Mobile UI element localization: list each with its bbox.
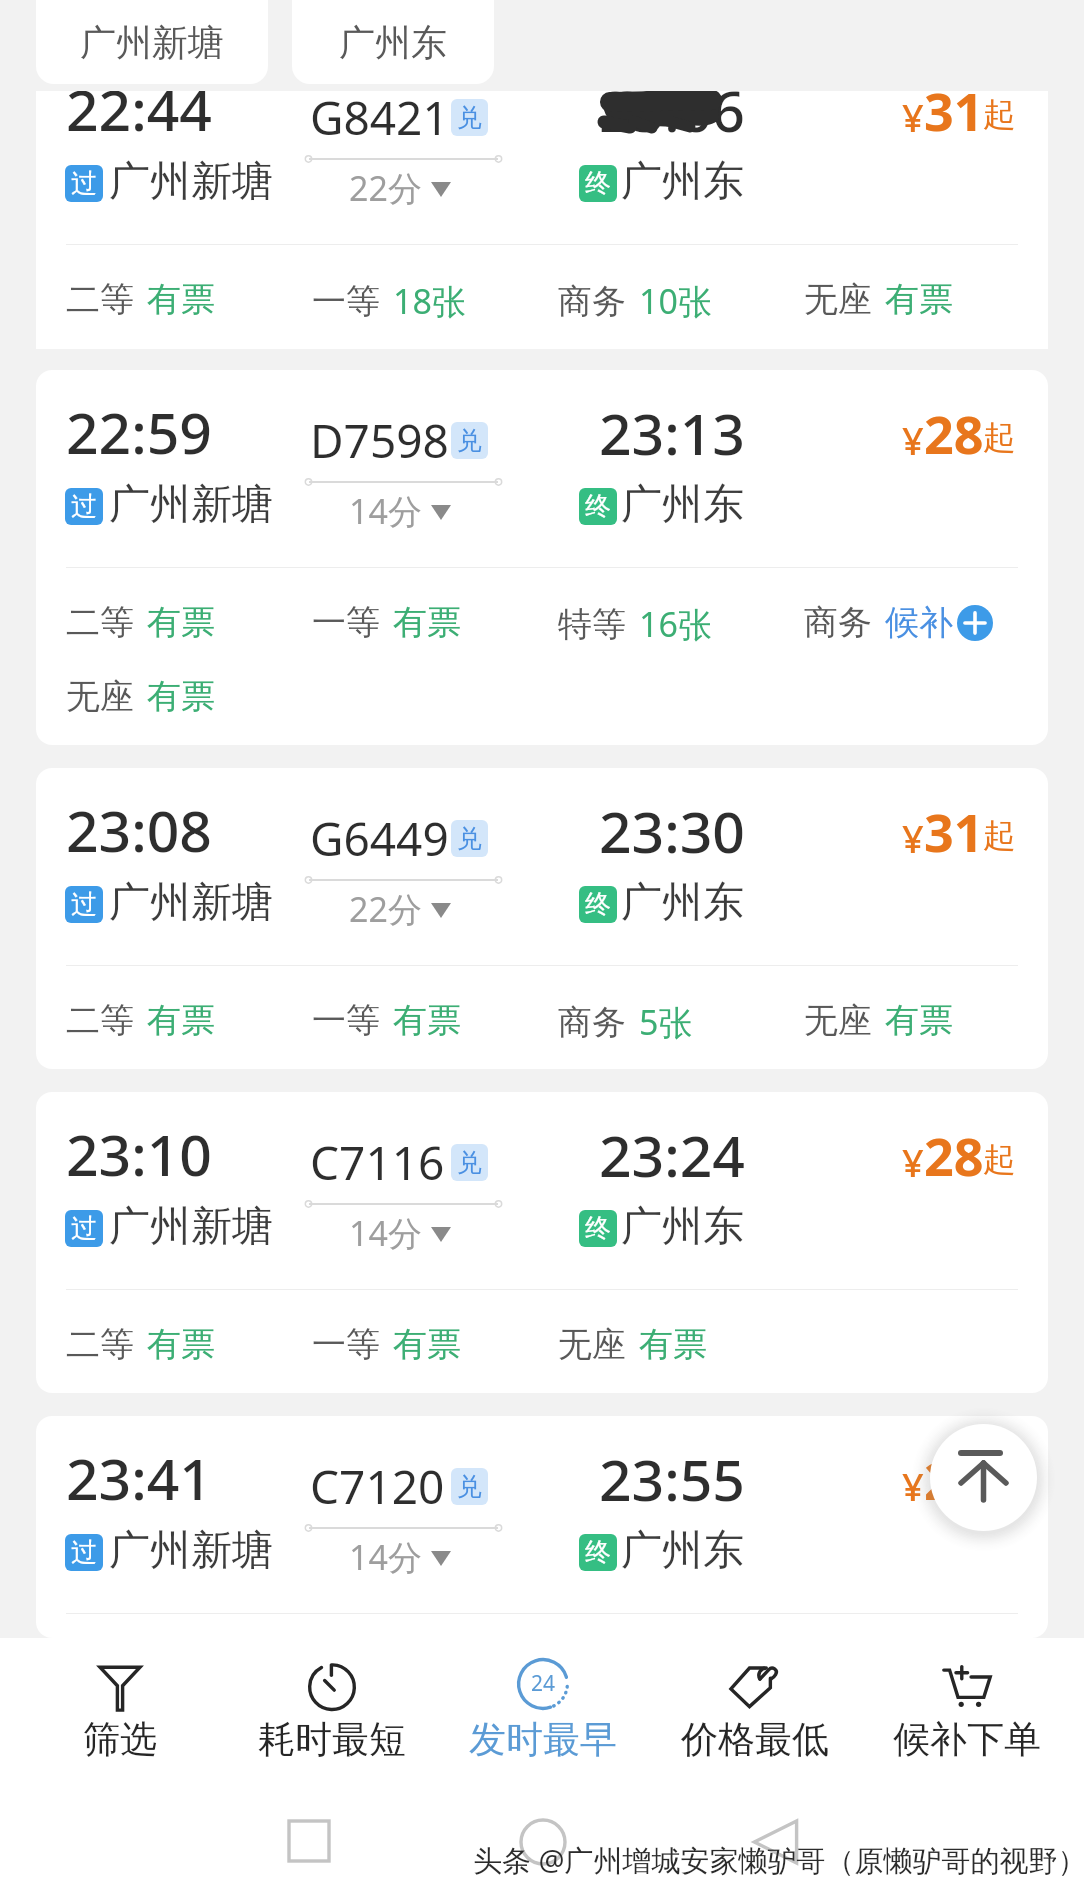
staticText: 广州东	[621, 1525, 744, 1577]
staticText: 有票	[885, 278, 953, 321]
staticText: 起	[983, 1139, 1016, 1181]
button[interactable]: 22:59	[36, 370, 1048, 745]
staticText: 14分	[349, 1534, 422, 1580]
staticText: 无座	[804, 999, 872, 1042]
staticText: 有票	[393, 999, 461, 1042]
staticText: ¥	[902, 1460, 924, 1512]
staticText: 二等	[66, 601, 134, 644]
staticText: 23:06	[599, 91, 745, 149]
button[interactable]: Back	[751, 1818, 799, 1866]
staticText: 有票	[639, 1323, 707, 1366]
staticText: 发时最早	[469, 1716, 617, 1763]
button[interactable]: 一等	[312, 278, 466, 324]
staticText: G6449	[310, 807, 449, 870]
staticText: 5张	[639, 999, 693, 1045]
staticText: 31	[924, 796, 984, 867]
button[interactable]: 广州东	[292, 0, 494, 84]
staticText: 23:55	[599, 1440, 745, 1518]
button[interactable]: 一等	[312, 601, 461, 644]
staticText: 兑	[457, 1147, 482, 1178]
staticText: 31	[924, 91, 984, 146]
button[interactable]: Add waitlist order	[957, 605, 993, 641]
staticText: 28	[924, 398, 984, 469]
staticText: 23:30	[599, 792, 745, 870]
staticText: 兑	[457, 823, 482, 854]
staticText: 有票	[147, 601, 215, 644]
staticText: 14分	[349, 1210, 422, 1256]
staticText: 有票	[147, 999, 215, 1042]
button[interactable]: 无座	[804, 999, 953, 1042]
button[interactable]: 二等	[66, 999, 215, 1042]
staticText: 有票	[393, 1323, 461, 1366]
staticText: 商务	[804, 601, 872, 644]
staticText: 筛选	[83, 1716, 157, 1763]
staticText: 特等	[558, 603, 626, 646]
staticText: 广州东	[621, 479, 744, 531]
button[interactable]: 无座	[66, 675, 215, 718]
staticText: 有票	[147, 278, 215, 321]
staticText: 23:13	[599, 394, 745, 472]
staticText: 二等	[66, 1323, 134, 1366]
staticText: 商务	[558, 280, 626, 323]
staticText: 过	[71, 167, 97, 200]
staticText: 耗时最短	[258, 1716, 406, 1763]
staticText: 起	[983, 815, 1016, 857]
staticText: 16张	[639, 601, 712, 647]
staticText: 终	[585, 167, 611, 200]
button[interactable]: 23:41	[36, 1416, 1048, 1638]
button[interactable]: Recents	[289, 1821, 329, 1861]
button[interactable]: 23:08	[36, 768, 1048, 1069]
staticText: 有票	[147, 1323, 215, 1366]
staticText: G8421	[310, 91, 449, 149]
staticText: 广州东	[339, 20, 447, 65]
staticText: 起	[983, 94, 1016, 136]
staticText: 24	[531, 1669, 556, 1698]
staticText: 广州新塘	[109, 479, 273, 531]
staticText: 广州东	[621, 877, 744, 929]
staticText: 28	[924, 1444, 984, 1515]
staticText: ¥	[902, 414, 924, 466]
button[interactable]: 二等	[66, 278, 215, 321]
button[interactable]: 24	[443, 1655, 643, 1763]
staticText: 无座	[558, 1323, 626, 1366]
button[interactable]: Scroll to top	[930, 1424, 1037, 1531]
staticText: 一等	[312, 1323, 380, 1366]
staticText: 28	[924, 1120, 984, 1191]
staticText: 终	[585, 888, 611, 921]
button[interactable]: 一等	[312, 1323, 461, 1366]
staticText: 广州东	[621, 1201, 744, 1253]
staticText: 头条 @广州增城安家懒驴哥（原懒驴哥的视野）	[473, 1840, 1084, 1880]
staticText: 有票	[147, 675, 215, 718]
button[interactable]: 一等	[312, 999, 461, 1042]
staticText: 22分	[349, 165, 422, 211]
staticText: 起	[983, 417, 1016, 459]
staticText: 一等	[312, 601, 380, 644]
staticText: C7116	[310, 1131, 445, 1194]
button[interactable]: 筛选	[20, 1655, 220, 1763]
button[interactable]: 广州新塘	[36, 0, 268, 84]
staticText: 广州新塘	[109, 1201, 273, 1253]
button[interactable]: 商务	[558, 999, 693, 1045]
button[interactable]: 耗时最短	[232, 1655, 432, 1763]
staticText: ¥	[902, 812, 924, 864]
button[interactable]: 23:10	[36, 1092, 1048, 1393]
staticText: 10张	[639, 278, 712, 324]
staticText: 兑	[457, 425, 482, 456]
button[interactable]: 商务	[558, 278, 712, 324]
button[interactable]: 特等	[558, 601, 712, 647]
button[interactable]: 22:44	[36, 91, 1048, 349]
button[interactable]: Home	[519, 1818, 567, 1866]
button[interactable]: 二等	[66, 601, 215, 644]
staticText: 14分	[349, 488, 422, 534]
staticText: 过	[71, 888, 97, 921]
button[interactable]: 商务	[804, 601, 993, 644]
staticText: 一等	[312, 280, 380, 323]
staticText: 23:24	[599, 1116, 745, 1194]
staticText: D7598	[310, 409, 449, 472]
button[interactable]: 无座	[804, 278, 953, 321]
button[interactable]: 二等	[66, 1323, 215, 1366]
button[interactable]: 候补下单	[867, 1655, 1067, 1763]
button[interactable]: 价格最低	[655, 1655, 855, 1763]
staticText: 终	[585, 1212, 611, 1245]
button[interactable]: 无座	[558, 1323, 707, 1366]
